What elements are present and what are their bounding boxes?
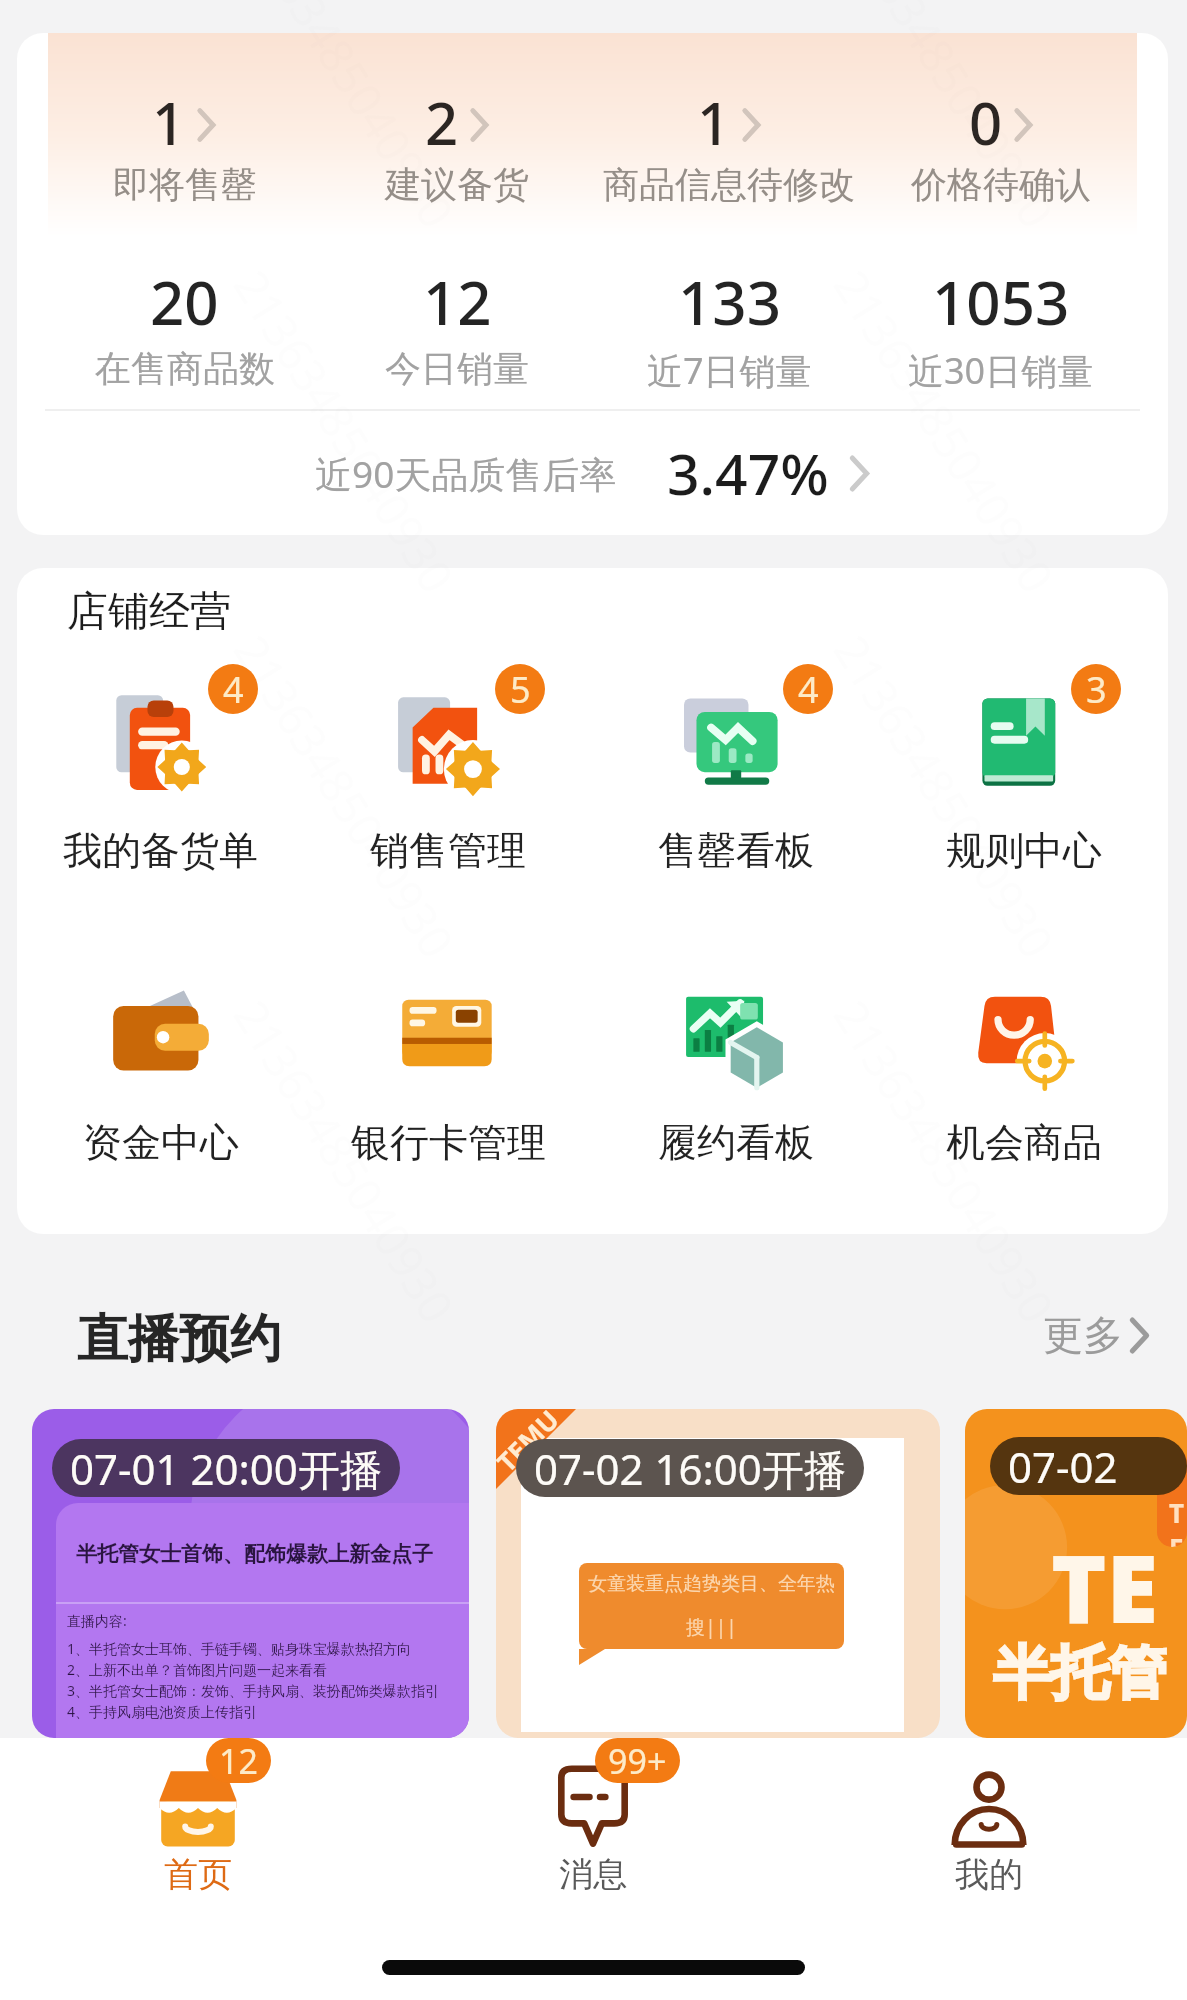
staticText: 0 xyxy=(969,83,1003,162)
staticText: 21363485040930 xyxy=(220,988,469,1335)
staticText: 07-01 20:00开播 xyxy=(70,1440,382,1497)
staticText: 建议备货 xyxy=(385,162,529,207)
staticText: 21363485040930 xyxy=(220,623,469,970)
staticText: 半托管女士首饰、配饰爆款上新金点子 xyxy=(76,1541,433,1567)
staticText: 价格待确认 xyxy=(911,162,1091,207)
staticText: TEMU xyxy=(496,1409,566,1479)
button[interactable]: 银行卡管理 xyxy=(304,982,592,1169)
staticText: 机会商品 xyxy=(946,1118,1102,1167)
button[interactable]: 履约看板 xyxy=(592,982,880,1169)
other: 消息 xyxy=(549,1760,637,1848)
staticText: 资金中心 xyxy=(83,1118,239,1167)
button[interactable]: 1053 xyxy=(865,261,1137,407)
button[interactable]: 1 xyxy=(48,33,321,237)
staticText: 规则中心 xyxy=(946,826,1102,875)
staticText: 2 xyxy=(425,83,459,162)
staticText: 更多 xyxy=(1043,1310,1123,1360)
staticText: 21363485040930 xyxy=(820,988,1069,1335)
staticText: 我的备货单 xyxy=(63,826,258,875)
staticText: 4 xyxy=(223,665,244,714)
staticText: 21363485040930 xyxy=(220,258,469,605)
staticText: 我的 xyxy=(955,1853,1023,1896)
staticText: 12 xyxy=(423,261,492,343)
button[interactable]: 近90天品质售后率 xyxy=(17,411,1168,535)
button[interactable]: 4 xyxy=(592,690,880,877)
button[interactable]: 3 xyxy=(880,690,1168,877)
staticText: TEMU xyxy=(1169,1495,1187,1547)
staticText: 近30日销量 xyxy=(908,346,1094,395)
staticText: 3 xyxy=(1086,665,1107,714)
button[interactable]: 资金中心 xyxy=(17,982,304,1169)
staticText: 1 xyxy=(697,83,731,162)
staticText: 商品信息待修改 xyxy=(603,162,855,207)
button[interactable]: 首页 xyxy=(0,1738,395,1900)
button[interactable]: 133 xyxy=(593,261,865,407)
staticText: 即将售罄 xyxy=(113,162,257,207)
staticText: 半托管流量 xyxy=(993,1637,1187,1710)
staticText: 直播内容: xyxy=(67,1611,127,1630)
button[interactable]: 20 xyxy=(48,261,321,407)
staticText: 5 xyxy=(510,665,531,714)
other: 我的 xyxy=(950,1770,1028,1848)
staticText: 1、半托管女士耳饰、手链手镯、贴身珠宝爆款热招方向 xyxy=(67,1639,412,1658)
button[interactable]: 12 xyxy=(321,261,593,407)
staticText: 12 xyxy=(219,1738,258,1783)
button[interactable]: 消息 xyxy=(395,1738,791,1900)
button[interactable]: 4 xyxy=(17,690,304,877)
button[interactable]: 5 xyxy=(304,690,592,877)
staticText: 99+ xyxy=(608,1738,667,1783)
staticText: 履约看板 xyxy=(658,1118,814,1167)
staticText: 20 xyxy=(150,261,219,343)
staticText: 首页 xyxy=(164,1853,232,1896)
staticText: 1053 xyxy=(932,261,1070,343)
staticText: 07-02 16:00开播 xyxy=(534,1440,846,1497)
button[interactable]: 我的 xyxy=(791,1738,1187,1900)
staticText: 在售商品数 xyxy=(95,346,275,391)
staticText: 今日销量 xyxy=(385,346,529,391)
staticText: 3、半托管女士配饰：发饰、手持风扇、装扮配饰类爆款指引 xyxy=(67,1681,440,1700)
staticText: 女童装重点趋势类目、全年热 搜||| xyxy=(588,1572,835,1640)
other: 首页 xyxy=(158,1768,238,1848)
staticText: 21363485040930 xyxy=(820,623,1069,970)
staticText: 近90天品质售后率 xyxy=(315,448,617,499)
button[interactable]: 1 xyxy=(593,33,865,237)
staticText: 销售管理 xyxy=(370,826,526,875)
button[interactable]: 机会商品 xyxy=(880,982,1168,1169)
staticText: 2、上新不出单？首饰图片问题一起来看看 xyxy=(67,1660,328,1679)
staticText: 售罄看板 xyxy=(658,826,814,875)
staticText: 4 xyxy=(798,665,819,714)
staticText: 近7日销量 xyxy=(647,346,812,395)
staticText: 银行卡管理 xyxy=(351,1118,546,1167)
staticText: 消息 xyxy=(559,1853,627,1896)
staticText: 直播预约 xyxy=(77,1307,281,1371)
staticText: 店铺经营 xyxy=(67,586,231,638)
staticText: 4、手持风扇电池资质上传指引 xyxy=(67,1702,258,1721)
staticText: 21363485040930 xyxy=(820,258,1069,605)
button[interactable]: 更多 xyxy=(1043,1310,1151,1360)
staticText: 133 xyxy=(678,261,781,343)
staticText: TEMU xyxy=(1051,1523,1187,1651)
staticText: 21363485040930 xyxy=(220,0,469,240)
staticText: 3.47% xyxy=(667,434,829,512)
button[interactable]: 女童装重点趋势类目、全年热 搜||| xyxy=(496,1409,940,1738)
staticText: 1 xyxy=(152,83,186,162)
button[interactable]: TEMU xyxy=(965,1409,1187,1738)
staticText: 21363485040930 xyxy=(820,0,1069,240)
button[interactable]: 0 xyxy=(865,33,1137,237)
staticText: 07-02 20:00开播 xyxy=(1008,1438,1169,1495)
button[interactable]: 半托管女士首饰、配饰爆款上新金点子 xyxy=(32,1409,469,1738)
button[interactable]: 2 xyxy=(321,33,593,237)
